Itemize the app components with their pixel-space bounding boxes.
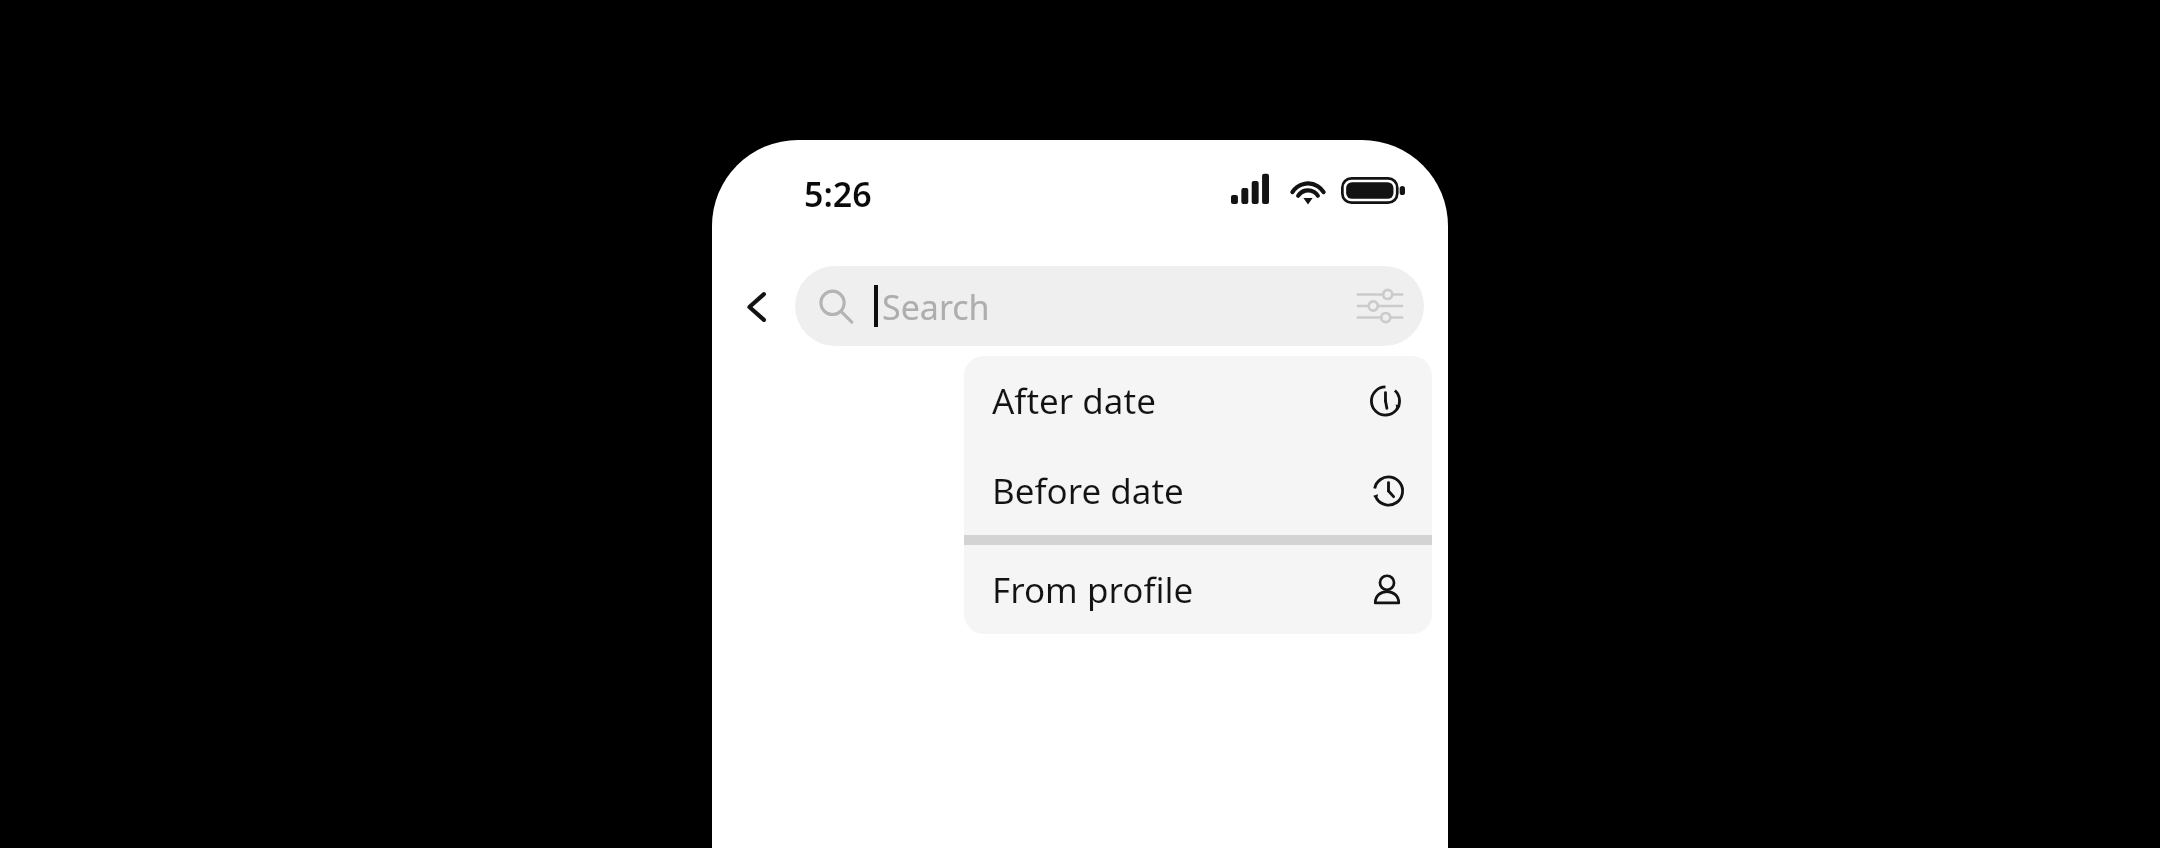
staticText: Before date: [992, 467, 1368, 515]
button[interactable]: From profile: [964, 545, 1432, 634]
staticText: Search: [882, 284, 990, 330]
button[interactable]: Back: [727, 279, 783, 335]
staticText: From profile: [992, 566, 1368, 614]
staticText: 5:26: [804, 171, 872, 217]
staticText: After date: [992, 377, 1368, 425]
button[interactable]: Search: [795, 266, 1424, 346]
button[interactable]: After date: [964, 356, 1432, 446]
button[interactable]: Search filters: [1356, 282, 1404, 330]
button[interactable]: Before date: [964, 446, 1432, 535]
